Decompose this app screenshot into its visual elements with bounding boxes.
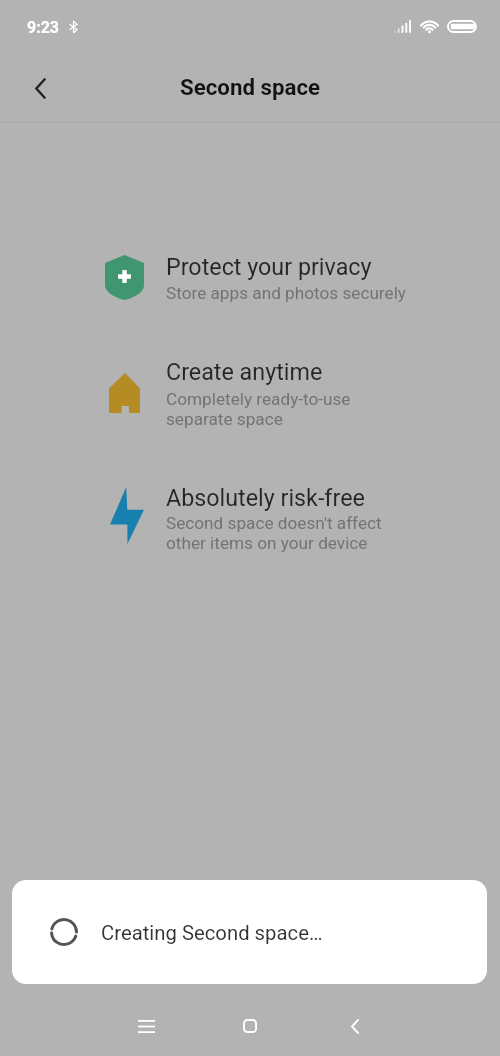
button[interactable]: Absolutely risk-free: [0, 476, 500, 566]
staticText: Absolutely risk-free: [166, 484, 365, 511]
button[interactable]: Home: [220, 998, 280, 1054]
staticText: Second space doesn't affect other items …: [166, 513, 382, 554]
staticText: Completely ready-to-use separate space: [166, 389, 351, 430]
button[interactable]: Create anytime: [0, 350, 500, 440]
staticText: Create anytime: [166, 358, 323, 385]
staticText: Protect your privacy: [166, 253, 372, 280]
staticText: Store apps and photos securely: [166, 283, 406, 303]
button[interactable]: Protect your privacy: [0, 245, 500, 315]
staticText: 9:23: [27, 18, 60, 37]
button[interactable]: Recent apps: [116, 998, 176, 1054]
staticText: Creating Second space…: [101, 921, 323, 945]
button[interactable]: Creating Second space…: [12, 880, 487, 984]
button[interactable]: Back: [325, 998, 385, 1054]
staticText: Second space: [0, 74, 500, 100]
button[interactable]: Back: [16, 64, 64, 112]
